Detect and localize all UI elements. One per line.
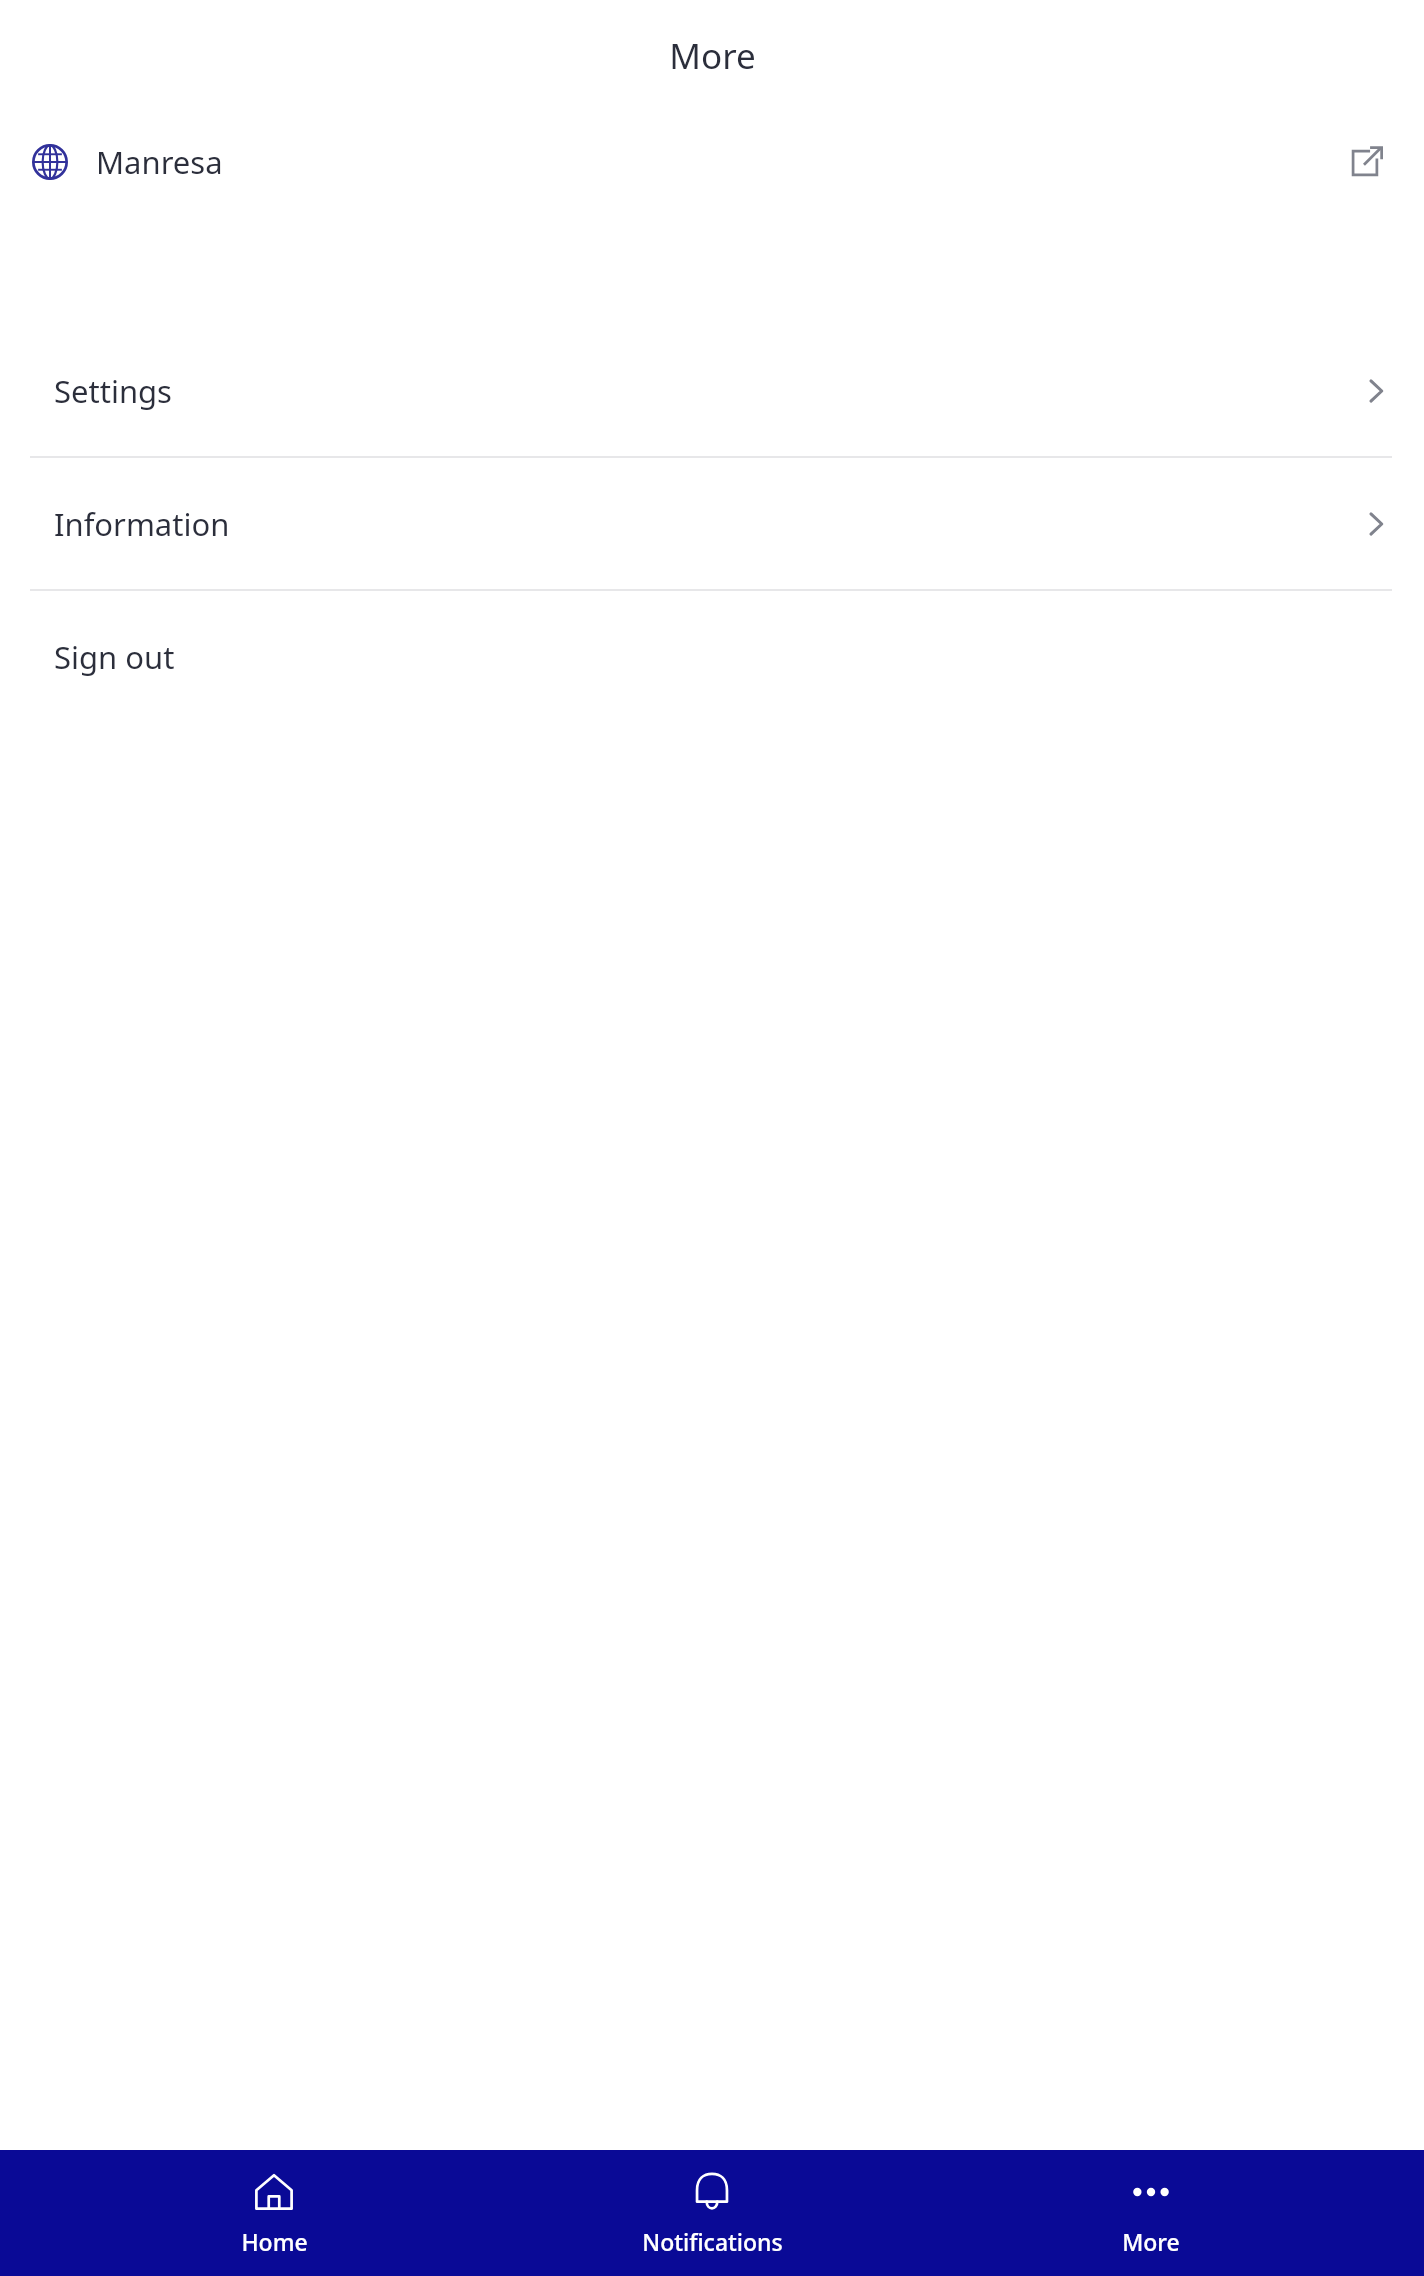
staticText: Settings [54, 370, 172, 412]
button[interactable]: Settings [0, 325, 1424, 456]
button[interactable]: More [986, 2162, 1316, 2265]
button[interactable]: Information [0, 458, 1424, 589]
staticText: Sign out [54, 636, 175, 678]
button[interactable]: Sign out [0, 591, 1424, 722]
staticText: Notifications [642, 2226, 783, 2257]
staticText: Information [54, 503, 230, 545]
button[interactable]: Home [109, 2162, 439, 2265]
button[interactable]: Manresa [0, 112, 1424, 212]
button[interactable]: Notifications [547, 2162, 877, 2265]
staticText: More [1122, 2226, 1180, 2257]
button[interactable]: Open website [1338, 134, 1394, 190]
staticText: Manresa [96, 141, 223, 183]
staticText: More [669, 32, 756, 80]
staticText: Home [241, 2226, 308, 2257]
